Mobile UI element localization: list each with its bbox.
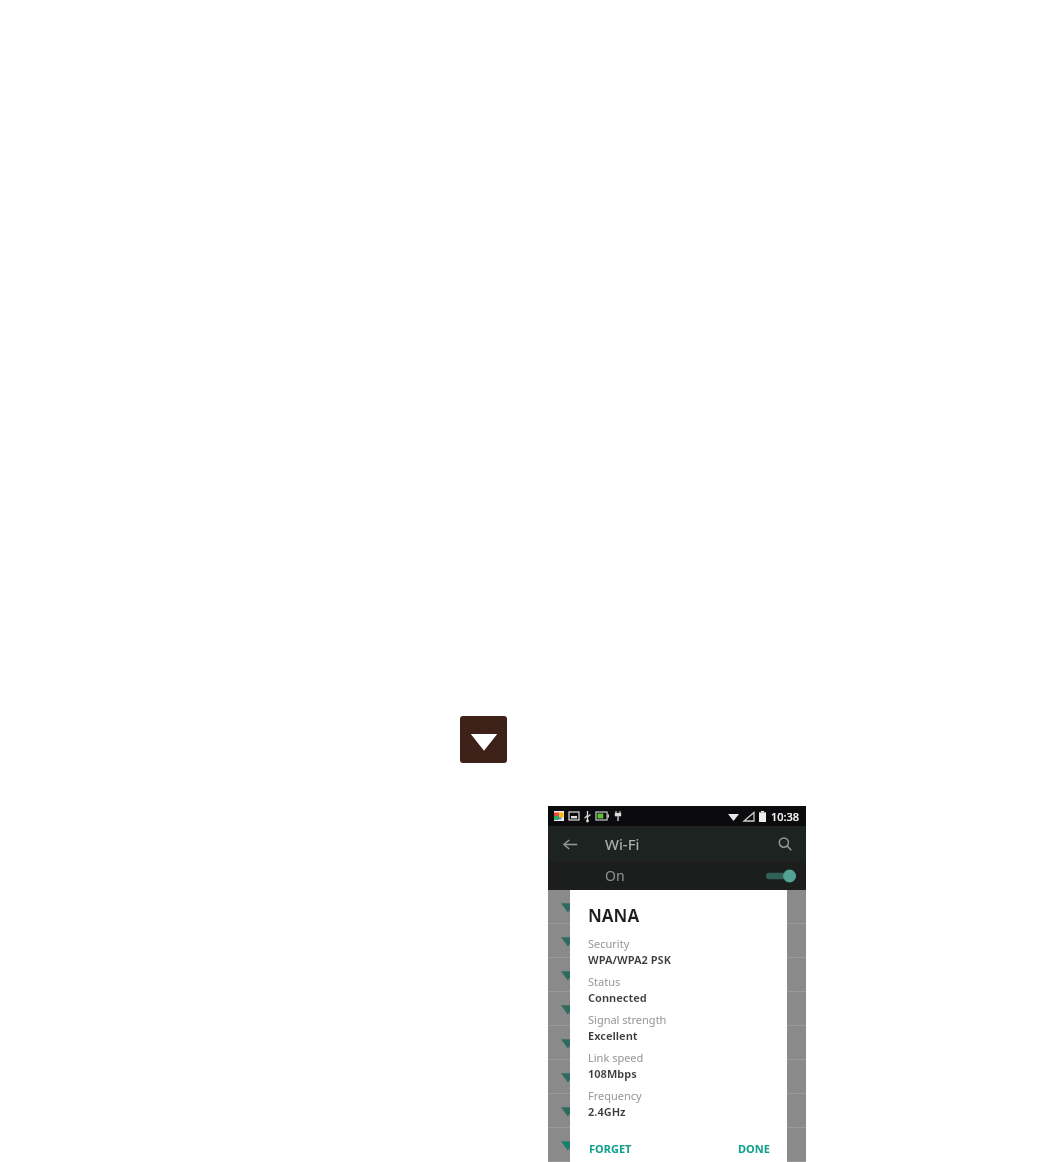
button[interactable]: Search — [770, 829, 800, 859]
button[interactable]: DONE — [737, 1138, 771, 1159]
staticText: Wi-Fi — [605, 834, 640, 854]
staticText: 360WiFi-VC — [600, 1136, 668, 1154]
staticText: FORGET — [589, 1141, 632, 1156]
staticText: Link speed — [588, 1050, 644, 1065]
button[interactable] — [548, 1060, 806, 1093]
staticText: 10:38 — [771, 809, 800, 824]
staticText: Excellent — [588, 1028, 638, 1043]
staticText: Security — [588, 936, 630, 951]
button[interactable] — [548, 890, 806, 923]
button[interactable] — [548, 924, 806, 957]
button[interactable]: 360WiFi-VC — [548, 1128, 806, 1161]
button[interactable] — [548, 958, 806, 991]
button[interactable] — [548, 992, 806, 1025]
staticText: NANA — [588, 904, 640, 927]
staticText: Connected — [588, 990, 647, 1005]
button[interactable]: Wi-Fi app icon — [460, 716, 507, 763]
button[interactable]: FORGET — [588, 1138, 633, 1159]
staticText: On — [605, 866, 625, 885]
other: Wi-Fi on — [766, 869, 796, 883]
staticText: Status — [588, 974, 621, 989]
button[interactable] — [548, 1026, 806, 1059]
button[interactable]: Back — [556, 830, 584, 858]
staticText: 2.4GHz — [588, 1104, 626, 1119]
button[interactable] — [548, 1094, 806, 1127]
staticText: WPA/WPA2 PSK — [588, 952, 671, 967]
staticText: DONE — [738, 1141, 770, 1156]
staticText: Signal strength — [588, 1012, 667, 1027]
button[interactable]: On — [548, 861, 806, 890]
staticText: Frequency — [588, 1088, 642, 1103]
staticText: 108Mbps — [588, 1066, 637, 1081]
